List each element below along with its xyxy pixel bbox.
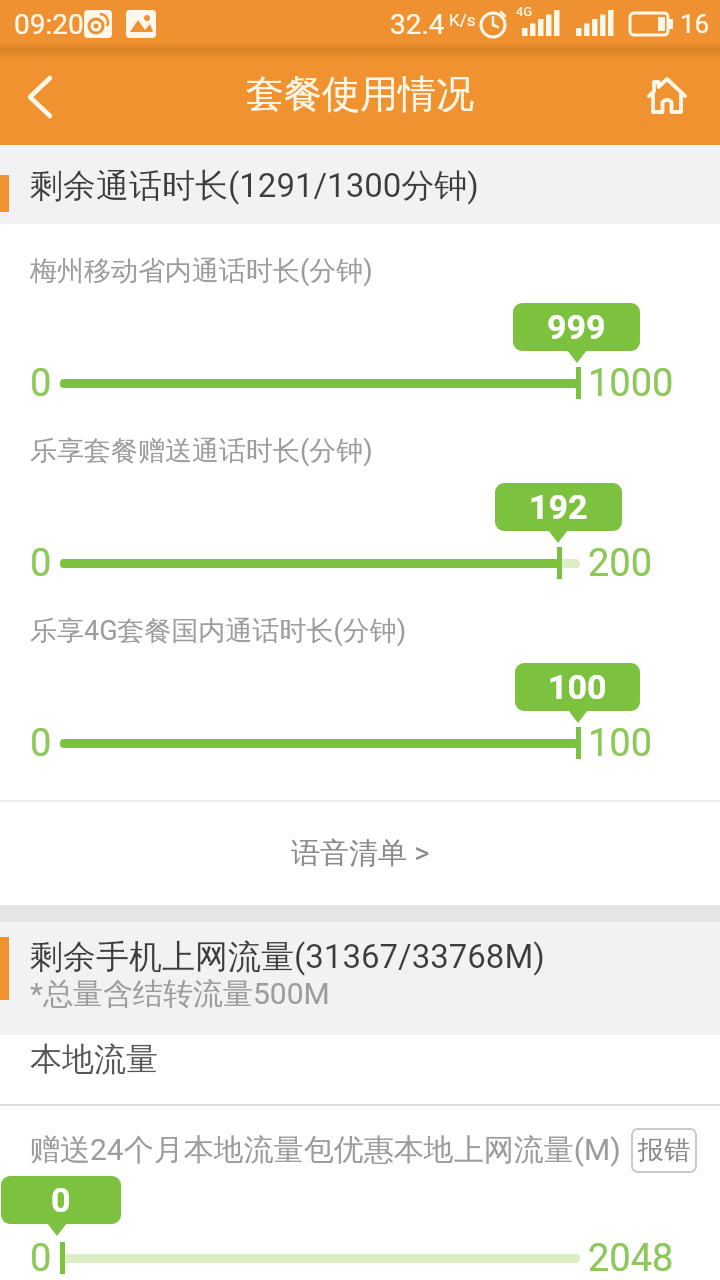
staticText: 0 — [30, 721, 52, 765]
staticText: 0 — [30, 541, 52, 585]
staticText: 100 — [588, 721, 653, 765]
staticText: 0 — [30, 1236, 52, 1280]
staticText: 09:20 — [14, 8, 84, 41]
staticText: 剩余通话时长(1291/1300分钟) — [30, 165, 479, 207]
staticText: 乐享套餐赠送通话时长(分钟) — [30, 434, 373, 468]
staticText: 200 — [588, 541, 653, 585]
button[interactable]: 100 — [515, 663, 640, 711]
staticText: K/s — [449, 10, 476, 30]
staticText: 套餐使用情况 — [246, 70, 474, 118]
button[interactable]: 报错 — [632, 1129, 696, 1172]
staticText: 赠送24个月本地流量包优惠本地上网流量(M) — [30, 1131, 621, 1169]
button[interactable]: 192 — [495, 483, 622, 531]
staticText: 16 — [680, 9, 710, 39]
staticText: 999 — [547, 307, 606, 347]
staticText: 0 — [51, 1180, 71, 1220]
button[interactable]: 999 — [513, 303, 640, 351]
staticText: 100 — [548, 667, 607, 707]
staticText: 2048 — [588, 1236, 674, 1280]
button[interactable] — [638, 66, 696, 124]
button[interactable]: 0 — [1, 1176, 121, 1224]
staticText: 1000 — [588, 361, 674, 405]
staticText: 192 — [529, 487, 588, 527]
staticText: 本地流量 — [30, 1039, 158, 1079]
staticText: *总量含结转流量500M — [30, 975, 330, 1013]
button[interactable] — [10, 68, 70, 128]
staticText: 语音清单 > — [291, 835, 430, 872]
staticText: 报错 — [638, 1134, 690, 1167]
staticText: 32.4 — [390, 8, 445, 41]
staticText: 0 — [30, 361, 52, 405]
button[interactable]: 语音清单 > — [0, 820, 720, 886]
staticText: 剩余手机上网流量(31367/33768M) — [30, 936, 545, 978]
staticText: 乐享4G套餐国内通话时长(分钟) — [30, 614, 407, 648]
staticText: 梅州移动省内通话时长(分钟) — [30, 254, 373, 288]
staticText: 4G — [516, 4, 533, 19]
